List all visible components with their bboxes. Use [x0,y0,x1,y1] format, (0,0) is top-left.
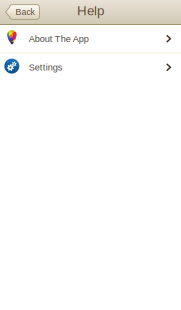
staticText: Settings [29,62,63,72]
staticText: Help [77,3,104,18]
button[interactable]: About The App [0,25,181,52]
button[interactable]: Back [5,4,40,20]
button[interactable]: Settings [0,54,181,81]
staticText: Back [15,7,34,17]
staticText: About The App [29,34,89,44]
